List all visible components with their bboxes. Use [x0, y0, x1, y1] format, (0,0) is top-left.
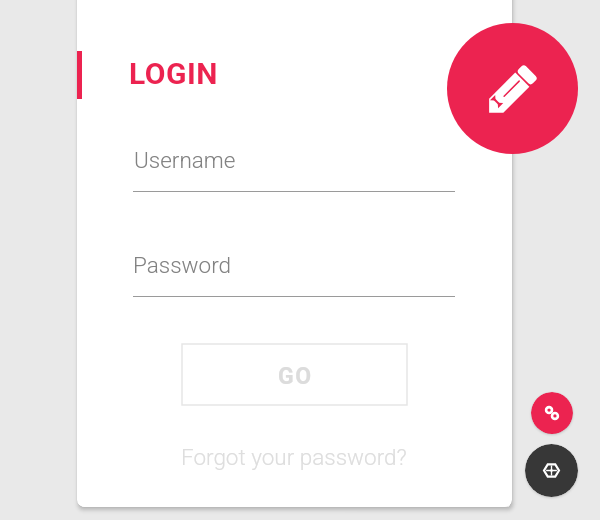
button[interactable]: Forgot your password?: [181, 444, 407, 470]
staticText: LOGIN: [129, 56, 218, 91]
staticText: Password: [133, 252, 232, 278]
staticText: GO: [278, 363, 313, 390]
button[interactable]: Settings: [525, 444, 578, 497]
staticText: Username: [134, 147, 236, 173]
button[interactable]: GO: [182, 344, 407, 405]
button[interactable]: Link: [531, 392, 573, 434]
staticText: Forgot your password?: [181, 444, 407, 470]
button[interactable]: Edit: [447, 23, 578, 154]
